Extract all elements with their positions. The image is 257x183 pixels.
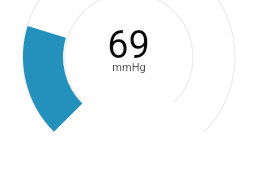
staticText: mmHg: [112, 61, 146, 74]
staticText: 69: [107, 23, 150, 68]
button[interactable]: Blood pressure gauge, 69 mmHg: [0, 0, 257, 183]
